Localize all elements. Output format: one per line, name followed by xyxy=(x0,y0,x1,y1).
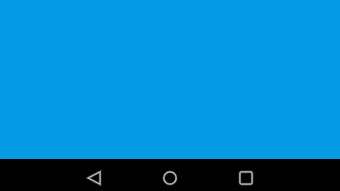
button[interactable]: Home xyxy=(142,159,198,191)
button[interactable]: Back xyxy=(66,159,122,191)
button[interactable]: Recent apps xyxy=(218,159,274,191)
